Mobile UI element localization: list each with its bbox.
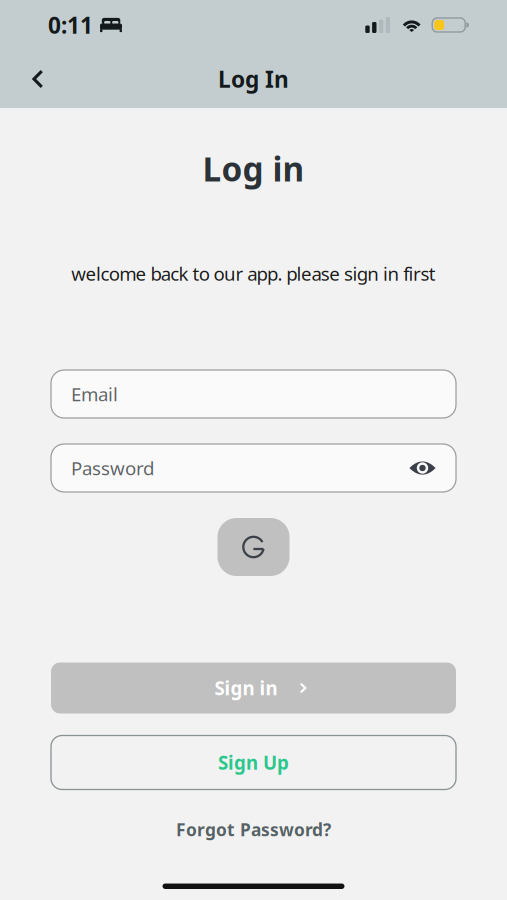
- button[interactable]: Sign in: [51, 662, 456, 713]
- button[interactable]: Email: [51, 370, 456, 418]
- staticText: Email: [71, 382, 118, 406]
- staticText: Password: [71, 456, 154, 480]
- staticText: welcome back to our app. please sign in …: [71, 261, 436, 286]
- staticText: Log In: [218, 64, 289, 94]
- button[interactable]: Sign Up: [51, 735, 456, 789]
- button[interactable]: Password: [51, 444, 456, 492]
- button[interactable]: Sign in with Google: [217, 518, 289, 576]
- staticText: Log in: [202, 146, 304, 191]
- staticText: Forgot Password?: [176, 818, 331, 841]
- button[interactable]: Forgot Password?: [167, 818, 340, 840]
- staticText: Sign Up: [218, 750, 289, 775]
- staticText: Sign in: [214, 676, 277, 700]
- button[interactable]: Back: [14, 54, 62, 104]
- staticText: 0:11: [48, 10, 93, 40]
